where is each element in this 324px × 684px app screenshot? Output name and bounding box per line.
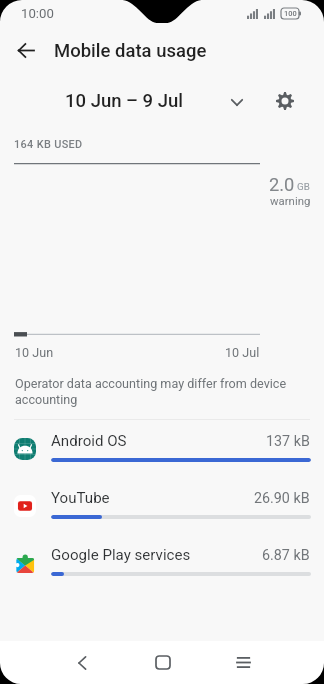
staticText: 26.90 kB [254,490,310,507]
button[interactable]: Back [59,641,104,684]
staticText: YouTube [51,489,110,507]
staticText: 10 Jun [15,345,54,360]
button[interactable]: Android OS [0,420,324,477]
button[interactable]: Recent apps [221,641,266,684]
staticText: 2.0 [269,174,295,195]
button[interactable]: 10 Jun – 9 Jul [54,79,254,123]
button[interactable]: Google Play services [0,534,324,591]
staticText: Google Play services [51,546,191,564]
staticText: 137 kB [266,433,310,450]
button[interactable]: YouTube [0,477,324,534]
staticText: 10:00 [21,6,54,21]
staticText: Android OS [51,432,127,450]
staticText: 100 [284,9,297,18]
staticText: 6.87 kB [262,547,310,564]
staticText: Operator data accounting may differ from… [15,376,300,407]
staticText: Mobile data usage [54,40,207,62]
staticText: GB [297,181,310,192]
button[interactable]: Settings [264,79,305,123]
button[interactable]: Home [140,641,185,684]
staticText: 164 KB USED [14,138,83,151]
button[interactable]: Back [4,29,47,72]
staticText: 10 Jul [225,345,260,360]
staticText: 10 Jun – 9 Jul [65,90,183,112]
staticText: warning [270,194,311,207]
